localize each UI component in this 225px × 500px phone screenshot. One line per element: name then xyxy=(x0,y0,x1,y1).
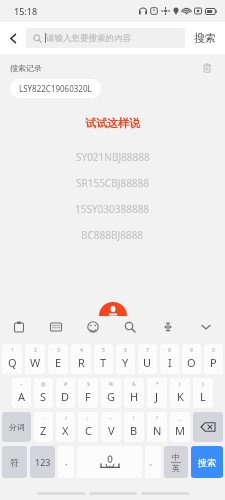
staticText: 0 xyxy=(212,347,215,354)
button[interactable]: Voice input xyxy=(99,302,127,316)
staticText: P xyxy=(210,355,217,370)
button[interactable]: 中 xyxy=(164,446,188,478)
staticText: W xyxy=(30,355,41,370)
button[interactable]: ( xyxy=(170,378,190,408)
button[interactable]: 123 xyxy=(30,446,55,478)
staticText: 8 xyxy=(168,347,171,354)
button[interactable]: 请输入您要搜索的内容 xyxy=(26,28,185,48)
staticText: A xyxy=(18,389,26,404)
button[interactable]: 8 xyxy=(160,344,179,374)
button[interactable]: 1 xyxy=(2,344,22,374)
staticText: 搜索记录 xyxy=(10,63,42,73)
button[interactable]: LSY822C19060320L xyxy=(10,79,101,98)
staticText: 123 xyxy=(35,456,51,468)
staticText: / xyxy=(65,415,67,422)
button[interactable]: * xyxy=(147,378,167,408)
button[interactable]: BC888BJ8888 xyxy=(0,222,225,248)
staticText: 符 xyxy=(10,457,19,468)
staticText: 请输入您要搜索的内容 xyxy=(46,33,131,44)
button[interactable]: $ xyxy=(78,378,98,408)
button[interactable]: 分词 xyxy=(2,412,31,442)
button[interactable]: 9 xyxy=(182,344,201,374)
button[interactable]: Space xyxy=(77,446,142,478)
button[interactable]: 符 xyxy=(2,446,27,478)
button[interactable]: Emoji xyxy=(74,316,111,338)
button[interactable]: % xyxy=(101,378,121,408)
staticText: ， xyxy=(62,457,70,467)
button[interactable]: - xyxy=(101,412,121,442)
staticText: SY021NBJ88888 xyxy=(76,150,150,164)
staticText: BC888BJ8888 xyxy=(81,228,144,242)
button[interactable]: Clear history xyxy=(199,60,215,76)
staticText: # xyxy=(64,381,68,388)
staticText: $ xyxy=(87,381,90,388)
staticText: ( xyxy=(179,381,181,388)
staticText: Z xyxy=(40,423,47,438)
staticText: 6 xyxy=(124,347,127,354)
staticText: ? xyxy=(156,415,159,422)
button[interactable]: / xyxy=(56,412,75,442)
button[interactable]: Clipboard xyxy=(0,316,37,338)
staticText: 。 xyxy=(149,457,157,467)
button[interactable]: 7 xyxy=(138,344,157,374)
button[interactable]: Hide keyboard xyxy=(187,316,225,338)
staticText: : xyxy=(87,415,89,422)
staticText: 4 xyxy=(80,347,83,354)
button[interactable]: 。 xyxy=(145,446,161,478)
staticText: - xyxy=(110,415,112,422)
button[interactable]: : xyxy=(78,412,98,442)
staticText: O xyxy=(187,355,196,370)
button[interactable]: 0 xyxy=(204,344,223,374)
staticText: 搜索 xyxy=(194,31,216,45)
button[interactable]: ~ xyxy=(12,378,31,408)
staticText: 7 xyxy=(146,347,149,354)
button[interactable]: ! xyxy=(124,412,144,442)
staticText: ) xyxy=(202,381,204,388)
staticText: I xyxy=(168,355,172,370)
button[interactable]: 4 xyxy=(71,344,91,374)
staticText: 5 xyxy=(102,347,105,354)
button[interactable]: @ xyxy=(34,378,53,408)
staticText: 3 xyxy=(57,347,60,354)
button[interactable]: Search xyxy=(111,316,149,338)
button[interactable]: 3 xyxy=(48,344,68,374)
staticText: * xyxy=(156,381,159,388)
button[interactable]: SY021NBJ88888 xyxy=(0,144,225,170)
button[interactable]: ? xyxy=(147,412,167,442)
staticText: K xyxy=(177,389,184,404)
staticText: ! xyxy=(133,415,135,422)
button[interactable]: SR155CBJ88888 xyxy=(0,170,225,196)
button[interactable]: 15SY030388888 xyxy=(0,196,225,222)
staticText: 15SY030388888 xyxy=(75,202,150,216)
staticText: L xyxy=(200,389,206,404)
button[interactable]: 搜索 xyxy=(191,446,223,478)
button[interactable]: 6 xyxy=(116,344,135,374)
staticText: 分词 xyxy=(9,422,25,432)
staticText: U xyxy=(143,355,152,370)
staticText: N xyxy=(153,423,162,438)
button[interactable]: Back xyxy=(0,22,26,54)
button[interactable]: Keyboard layout xyxy=(37,316,74,338)
staticText: 15:18 xyxy=(14,5,38,17)
button[interactable]: 2 xyxy=(25,344,45,374)
button[interactable]: ) xyxy=(193,378,213,408)
button[interactable]: 5 xyxy=(94,344,113,374)
button[interactable]: & xyxy=(124,378,144,408)
staticText: 2 xyxy=(34,347,37,354)
staticText: T xyxy=(100,355,107,370)
staticText: SR155CBJ88888 xyxy=(76,176,150,190)
staticText: X xyxy=(62,423,69,438)
button[interactable]: Backspace xyxy=(193,412,223,442)
button[interactable]: · xyxy=(34,412,53,442)
staticText: S xyxy=(40,389,47,404)
staticText: V xyxy=(108,423,115,438)
staticText: ~ xyxy=(20,381,23,388)
button[interactable]: _ xyxy=(170,412,190,442)
staticText: Y xyxy=(122,355,129,370)
button[interactable]: 搜索 xyxy=(194,31,216,45)
staticText: H xyxy=(130,389,139,404)
button[interactable]: Move cursor xyxy=(149,316,187,338)
button[interactable]: ， xyxy=(58,446,74,478)
button[interactable]: # xyxy=(56,378,75,408)
staticText: G xyxy=(107,389,116,404)
